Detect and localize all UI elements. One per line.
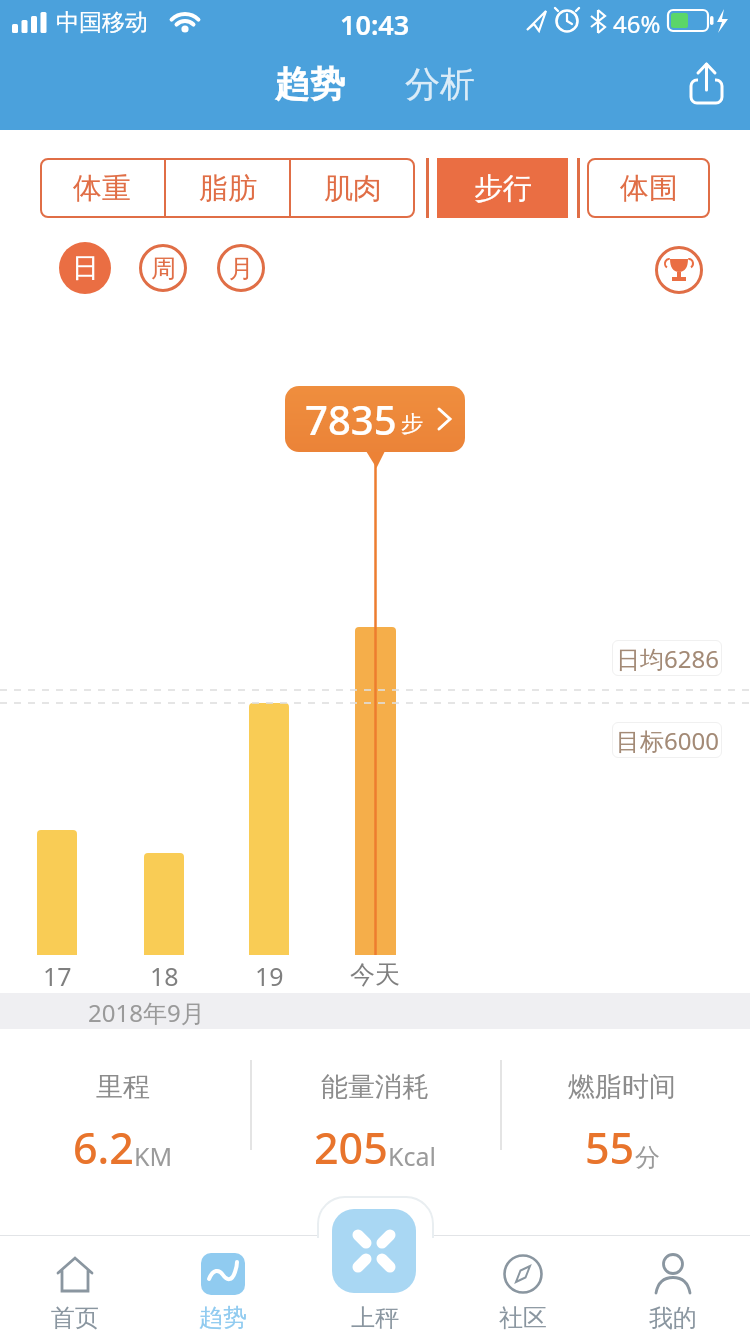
button[interactable]: 步行 [437, 158, 568, 218]
button[interactable]: 首页 [15, 1252, 135, 1333]
staticText: 分 [635, 1142, 660, 1173]
staticText: 体围 [620, 170, 678, 207]
staticText: 我的 [649, 1303, 697, 1333]
staticText: 6.2 [73, 1118, 134, 1177]
button[interactable]: 体围 [587, 158, 710, 218]
button[interactable]: 脂肪 [166, 158, 289, 218]
button[interactable] [680, 56, 736, 112]
button[interactable]: 里程 [13, 1070, 233, 1177]
staticText: Kcal [388, 1139, 436, 1173]
button[interactable]: 趋势 [275, 62, 345, 106]
button[interactable]: 周 [139, 244, 187, 292]
button[interactable]: 我的 [613, 1252, 733, 1333]
button[interactable] [655, 246, 703, 294]
staticText: 周 [151, 253, 176, 284]
staticText: 17 [43, 959, 72, 993]
staticText: 里程 [96, 1070, 150, 1104]
staticText: 目标6000 [616, 724, 719, 757]
staticText: 社区 [499, 1303, 547, 1333]
staticText: 分析 [405, 62, 475, 106]
staticText: 步 [401, 410, 423, 438]
staticText: 10:43 [340, 6, 410, 43]
button[interactable]: 月 [217, 244, 265, 292]
staticText: 中国移动 [56, 8, 148, 37]
staticText: 日 [72, 251, 99, 285]
staticText: 18 [150, 959, 179, 993]
staticText: 上秤 [351, 1303, 399, 1333]
staticText: 步行 [474, 170, 532, 207]
staticText: 2018年9月 [88, 996, 205, 1029]
button[interactable]: 体重 [40, 158, 164, 218]
staticText: 日均6286 [616, 642, 719, 675]
staticText: 脂肪 [199, 170, 257, 207]
staticText: 燃脂时间 [568, 1070, 676, 1104]
staticText: 19 [255, 959, 284, 993]
button[interactable]: 社区 [463, 1252, 583, 1333]
staticText: 体重 [73, 170, 131, 207]
staticText: 能量消耗 [321, 1070, 429, 1104]
button[interactable]: 日 [59, 242, 111, 294]
button[interactable]: 能量消耗 [265, 1070, 485, 1177]
staticText: 趋势 [275, 62, 345, 106]
button[interactable]: 分析 [405, 62, 475, 106]
button[interactable]: 上秤 [315, 1303, 435, 1333]
button[interactable]: 趋势 [163, 1252, 283, 1333]
staticText: 55 [585, 1118, 635, 1177]
staticText: 趋势 [199, 1303, 247, 1333]
button[interactable]: 肌肉 [291, 158, 415, 218]
staticText: 46% [613, 7, 661, 40]
button[interactable] [332, 1209, 416, 1293]
button[interactable]: 燃脂时间 [512, 1070, 732, 1177]
staticText: 月 [229, 253, 254, 284]
staticText: KM [134, 1139, 173, 1173]
staticText: 肌肉 [324, 170, 382, 207]
staticText: 首页 [51, 1303, 99, 1333]
button[interactable]: 7835 [285, 386, 465, 452]
staticText: 今天 [350, 959, 400, 990]
staticText: 205 [314, 1118, 388, 1177]
staticText: 7835 [305, 392, 397, 446]
